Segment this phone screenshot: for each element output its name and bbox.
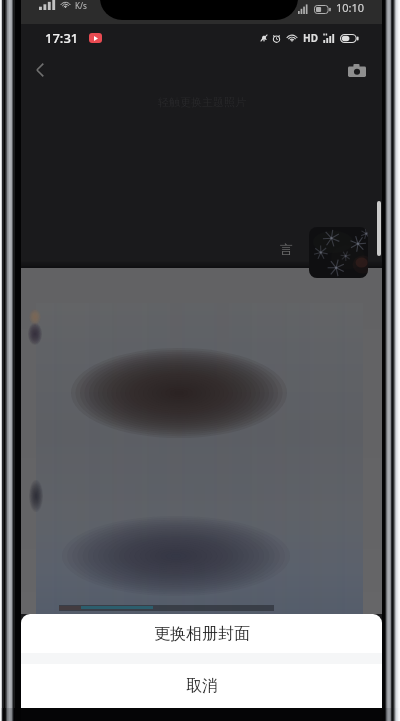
button[interactable]: Cover photo preview — [309, 227, 368, 278]
button[interactable]: 更换相册封面 — [21, 614, 382, 653]
button[interactable]: Back — [21, 52, 59, 88]
staticText: 17:31 — [45, 29, 79, 47]
button[interactable]: Camera — [340, 52, 374, 88]
staticText: 更换相册封面 — [154, 624, 250, 644]
staticText: K/s — [75, 0, 87, 11]
staticText: 言 — [280, 241, 293, 257]
staticText: 10:10 — [336, 0, 365, 15]
staticText: HD — [303, 31, 318, 45]
staticText: 轻触更换主题照片 — [158, 95, 246, 109]
staticText: 取消 — [186, 676, 218, 696]
button[interactable]: 取消 — [21, 664, 382, 708]
